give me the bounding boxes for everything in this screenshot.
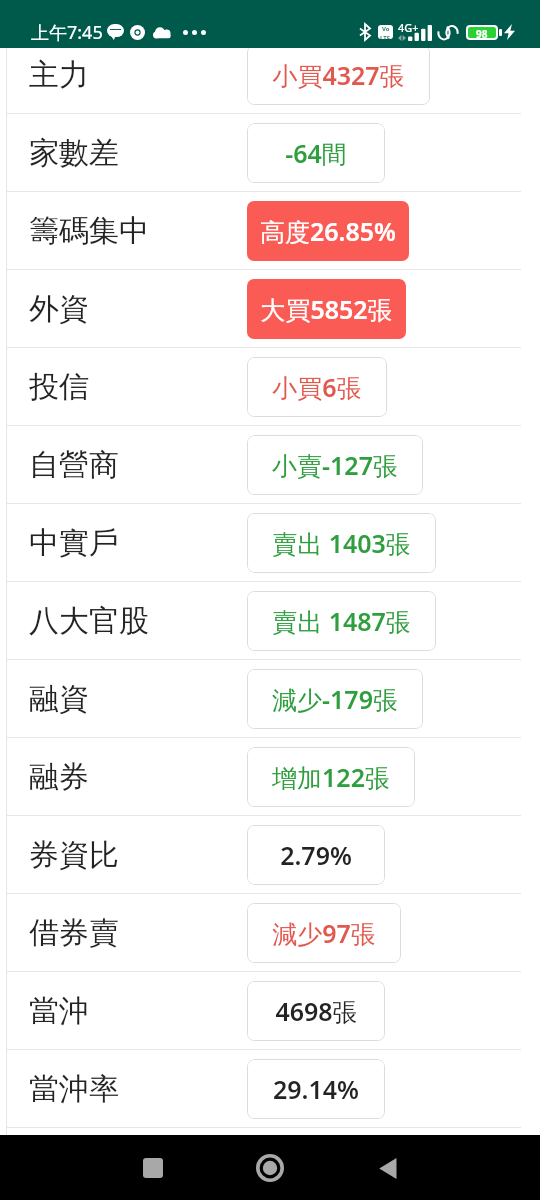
staticText: 家數差	[29, 134, 119, 172]
staticText: 大買5852張	[260, 292, 393, 326]
staticText: 2.79%	[280, 838, 352, 872]
staticText: 借券餘額	[29, 1148, 149, 1186]
staticText: 中實戶	[29, 524, 119, 562]
staticText: 98	[476, 27, 488, 38]
button[interactable]: 減少-179張	[247, 669, 423, 729]
staticText: 增加122張	[272, 760, 390, 794]
staticText: 4G+	[398, 20, 419, 35]
button[interactable]: 減少97張	[247, 903, 401, 963]
button[interactable]: 投信	[0, 348, 540, 425]
staticText: 上午7:45	[31, 20, 103, 45]
button[interactable]: Recent apps	[123, 1138, 183, 1198]
staticText: 融券	[29, 758, 89, 796]
staticText: 2556張	[275, 1150, 358, 1184]
button[interactable]: 小賣-127張	[247, 435, 423, 495]
button[interactable]: Home	[240, 1138, 300, 1198]
staticText: 主力	[29, 56, 89, 94]
button[interactable]: 小買4327張	[247, 45, 430, 105]
staticText: 減少-179張	[272, 682, 398, 716]
staticText: 高度26.85%	[260, 214, 396, 248]
button[interactable]: 融券	[0, 738, 540, 815]
button[interactable]: 借券餘額	[0, 1128, 540, 1200]
staticText: 外資	[29, 290, 89, 328]
button[interactable]: 主力	[0, 36, 540, 113]
button[interactable]: 當沖率	[0, 1050, 540, 1127]
staticText: 減少97張	[272, 916, 376, 950]
staticText: 融資	[29, 680, 89, 718]
button[interactable]: 賣出 1487張	[247, 591, 436, 651]
button[interactable]: 2556張	[247, 1137, 385, 1197]
staticText: 小賣-127張	[272, 448, 398, 482]
button[interactable]: 大買5852張	[247, 279, 406, 339]
staticText: 籌碼集中	[29, 212, 149, 250]
button[interactable]: Back	[357, 1138, 417, 1198]
button[interactable]: 賣出 1403張	[247, 513, 436, 573]
button[interactable]: 高度26.85%	[247, 201, 409, 261]
button[interactable]: 籌碼集中	[0, 192, 540, 269]
staticText: 自營商	[29, 446, 119, 484]
staticText: 投信	[29, 368, 89, 406]
staticText: 賣出 1403張	[272, 526, 411, 560]
button[interactable]: 中實戶	[0, 504, 540, 581]
button[interactable]: 29.14%	[247, 1059, 385, 1119]
staticText: 券資比	[29, 836, 119, 874]
button[interactable]: 當沖	[0, 972, 540, 1049]
button[interactable]: 八大官股	[0, 582, 540, 659]
staticText: Vo	[382, 25, 390, 33]
button[interactable]: 4698張	[247, 981, 385, 1041]
staticText: 賣出 1487張	[272, 604, 411, 638]
button[interactable]: 融資	[0, 660, 540, 737]
button[interactable]: 2.79%	[247, 825, 385, 885]
button[interactable]: 增加122張	[247, 747, 415, 807]
staticText: 小買6張	[272, 370, 362, 404]
button[interactable]: 借券賣	[0, 894, 540, 971]
staticText: 29.14%	[273, 1072, 359, 1106]
staticText: LTE	[380, 34, 391, 39]
button[interactable]: 自營商	[0, 426, 540, 503]
staticText: 小買4327張	[272, 58, 405, 92]
staticText: -64間	[285, 136, 347, 170]
button[interactable]: 券資比	[0, 816, 540, 893]
staticText: 借券賣	[29, 914, 119, 952]
staticText: 八大官股	[29, 602, 149, 640]
button[interactable]: -64間	[247, 123, 385, 183]
staticText: 當沖	[29, 992, 89, 1030]
staticText: 4698張	[275, 994, 358, 1028]
button[interactable]: 外資	[0, 270, 540, 347]
staticText: 當沖率	[29, 1070, 119, 1108]
button[interactable]: 小買6張	[247, 357, 387, 417]
button[interactable]: 家數差	[0, 114, 540, 191]
